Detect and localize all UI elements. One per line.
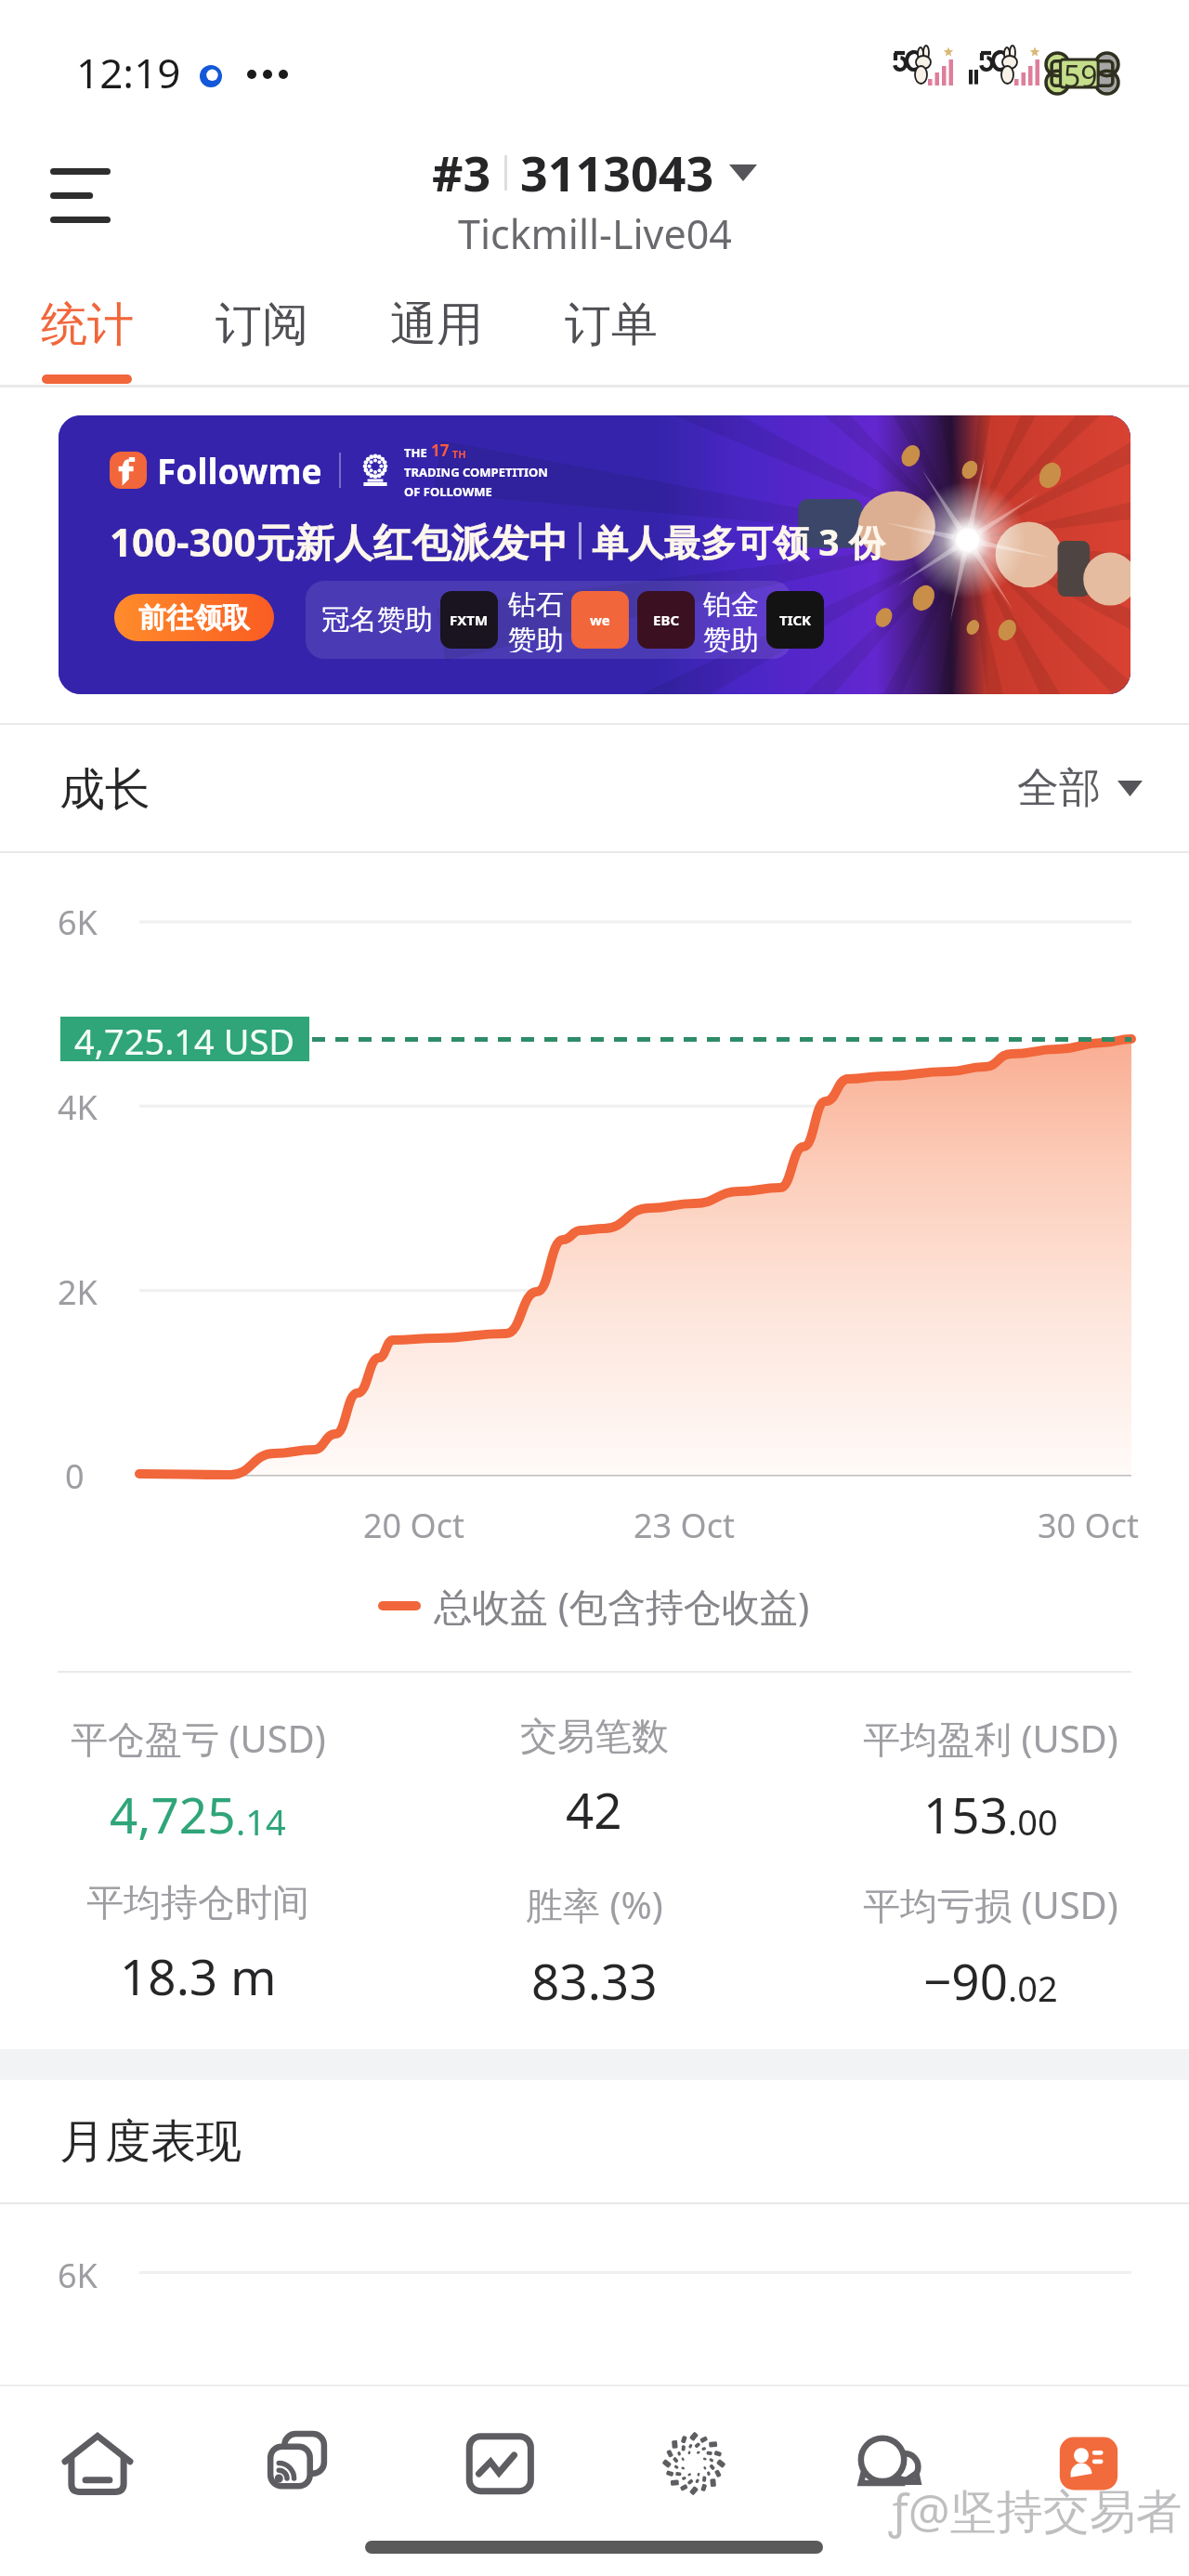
staticText: 平均亏损 (USD) (863, 1879, 1118, 1930)
button[interactable]: 统计 (0, 267, 175, 382)
staticText: 4,725.14 USD (74, 1017, 295, 1061)
staticText: 平均盈利 (USD) (863, 1713, 1118, 1764)
button[interactable]: Profile (990, 2394, 1187, 2533)
button[interactable]: 前往领取 (114, 594, 274, 641)
staticText: we (590, 611, 610, 629)
staticText: #3 (432, 139, 491, 205)
staticText: 18.3 m (120, 1942, 277, 2009)
button[interactable]: Copy trading (199, 2394, 396, 2533)
button[interactable]: Home (0, 2394, 196, 2533)
staticText: 4,725 (110, 1781, 236, 1847)
staticText: 30 Oct (1038, 1503, 1139, 1548)
staticText: TRADING COMPETITION (404, 464, 548, 480)
staticText: Tickmill-Live04 (458, 206, 732, 261)
staticText: OF FOLLOWME (404, 483, 492, 500)
staticText: 2K (58, 1269, 98, 1315)
staticText: 月度表现 (59, 2113, 242, 2171)
staticText: 平仓盈亏 (USD) (71, 1713, 326, 1764)
button[interactable]: Markets (397, 2394, 594, 2533)
staticText: 交易笔数 (520, 1713, 669, 1759)
staticText: 全部 (1017, 762, 1101, 815)
staticText: 赞助 (508, 623, 564, 652)
staticText: 赞助 (703, 623, 759, 652)
button[interactable]: 订阅 (175, 267, 349, 382)
staticText: 订单 (565, 296, 658, 354)
staticText: TH (450, 447, 466, 461)
staticText: TICK (779, 611, 812, 629)
staticText: 100-300元新人红包派发中 (110, 515, 568, 567)
button[interactable]: Messages (791, 2394, 988, 2533)
staticText: 铂金 (703, 587, 759, 623)
staticText: THE (404, 444, 431, 461)
button[interactable]: #3 (421, 139, 768, 205)
staticText: 统计 (41, 296, 134, 354)
staticText: .14 (236, 1797, 286, 1846)
button[interactable]: Discover (595, 2394, 792, 2533)
staticText: ƒ@坚持交易者 (889, 2478, 1182, 2542)
staticText: Followme (157, 447, 322, 493)
staticText: 订阅 (216, 296, 308, 354)
button[interactable]: 通用 (349, 267, 524, 382)
staticText: .00 (1008, 1797, 1058, 1846)
staticText: 12:19 (76, 45, 181, 100)
staticText: 6K (58, 900, 98, 945)
staticText: 17 (431, 440, 450, 461)
staticText: 83.33 (531, 1947, 658, 2014)
staticText: 42 (566, 1776, 622, 1843)
button[interactable]: 订单 (524, 267, 699, 382)
staticText: 6K (58, 2253, 98, 2298)
button[interactable]: Followme (59, 415, 1130, 694)
staticText: −90 (923, 1947, 1008, 2014)
staticText: 胜率 (%) (526, 1879, 663, 1930)
staticText: 0 (65, 1453, 85, 1499)
staticText: 23 Oct (634, 1503, 735, 1548)
staticText: 59 (1064, 56, 1098, 97)
staticText: 成长 (59, 761, 150, 819)
staticText: 钻石 (508, 587, 564, 623)
staticText: 通用 (390, 296, 483, 354)
staticText: 20 Oct (363, 1503, 464, 1548)
staticText: 冠名赞助 (321, 602, 433, 637)
staticText: 总收益 (包含持仓收益) (434, 1580, 810, 1632)
staticText: EBC (653, 611, 680, 629)
staticText: 平均持仓时间 (86, 1879, 309, 1925)
staticText: .02 (1008, 1964, 1058, 2012)
button[interactable]: Menu (24, 141, 136, 249)
staticText: 单人最多可领 3 份 (592, 517, 885, 566)
staticText: 3113043 (520, 139, 714, 205)
staticText: 前往领取 (138, 600, 250, 636)
button[interactable]: 全部 (1017, 762, 1143, 815)
staticText: 4K (58, 1084, 98, 1130)
staticText: 153 (923, 1781, 1008, 1847)
staticText: FXTM (450, 611, 489, 629)
